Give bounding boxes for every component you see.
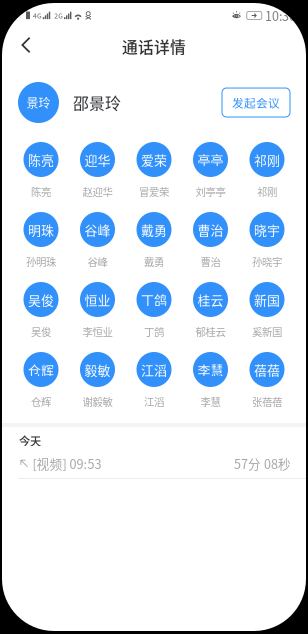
staticText: 爱荣 — [141, 150, 167, 169]
staticText: 赵迎华 — [82, 184, 112, 199]
staticText: 桂云 — [197, 290, 223, 309]
staticText: 戴勇 — [144, 254, 164, 269]
button[interactable]: 桂云 — [182, 282, 238, 344]
button[interactable]: 毅敏 — [69, 352, 125, 414]
staticText: 李恒业 — [82, 324, 112, 339]
staticText: 丁鸽 — [141, 290, 167, 309]
staticText: 2G — [54, 11, 63, 20]
button[interactable]: 祁刚 — [239, 142, 295, 204]
staticText: 迎华 — [84, 150, 110, 169]
button[interactable]: 曹治 — [182, 212, 238, 274]
staticText: 孙晓宇 — [252, 254, 282, 269]
button[interactable]: 丁鸽 — [126, 282, 182, 344]
staticText: 孙明珠 — [26, 254, 56, 269]
staticText: 通话详情 — [122, 35, 186, 58]
button[interactable]: 吴俊 — [13, 282, 69, 344]
button[interactable]: 戴勇 — [126, 212, 182, 274]
staticText: 丁鸽 — [144, 324, 164, 339]
staticText: 李慧 — [200, 394, 220, 409]
staticText: 发起会议 — [232, 94, 280, 111]
button[interactable]: 江滔 — [126, 352, 182, 414]
staticText: 吴俊 — [31, 324, 51, 339]
staticText: 奚新国 — [252, 324, 282, 339]
staticText: 谷峰 — [84, 220, 110, 239]
staticText: 明珠 — [28, 220, 54, 239]
button[interactable]: 谷峰 — [69, 212, 125, 274]
button[interactable]: 亭亭 — [182, 142, 238, 204]
staticText: 仓辉 — [31, 394, 51, 409]
staticText: 吴俊 — [28, 290, 54, 309]
button[interactable]: 晓宇 — [239, 212, 295, 274]
staticText: 4G — [33, 11, 42, 20]
staticText: 谷峰 — [87, 254, 107, 269]
button[interactable]: 爱荣 — [126, 142, 182, 204]
button[interactable]: 新国 — [239, 282, 295, 344]
staticText: 今天 — [19, 432, 41, 449]
staticText: 郁桂云 — [195, 324, 225, 339]
button[interactable]: 仓辉 — [13, 352, 69, 414]
staticText: 恒业 — [84, 290, 110, 309]
staticText: 曹治 — [200, 254, 220, 269]
staticText: 戴勇 — [141, 220, 167, 239]
button[interactable]: 明珠 — [13, 212, 69, 274]
staticText: 邵景玲 — [73, 91, 121, 114]
staticText: 冒爱荣 — [139, 184, 169, 199]
staticText: 祁刚 — [254, 150, 280, 169]
button[interactable]: 迎华 — [69, 142, 125, 204]
staticText: 刘亭亭 — [195, 184, 225, 199]
staticText: 李慧 — [197, 360, 223, 379]
staticText: 陈亮 — [28, 150, 54, 169]
button[interactable]: 陈亮 — [13, 142, 69, 204]
button[interactable]: 蓓蓓 — [239, 352, 295, 414]
button[interactable]: 发起会议 — [222, 88, 290, 117]
button[interactable]: 返回 — [10, 27, 42, 63]
staticText: 新国 — [254, 290, 280, 309]
button[interactable]: 恒业 — [69, 282, 125, 344]
staticText: 晓宇 — [254, 220, 280, 239]
staticText: 10:36 — [265, 6, 296, 24]
staticText: 江滔 — [144, 394, 164, 409]
staticText: 毅敏 — [84, 360, 110, 379]
staticText: 蓓蓓 — [254, 360, 280, 379]
staticText: 景玲 — [26, 94, 50, 111]
staticText: 谢毅敏 — [82, 394, 112, 409]
staticText: 57分 08秒 — [234, 454, 291, 472]
staticText: 祁刚 — [257, 184, 277, 199]
staticText: 仓辉 — [28, 360, 54, 379]
staticText: 江滔 — [141, 360, 167, 379]
staticText: [视频] 09:53 — [32, 454, 101, 473]
staticText: 陈亮 — [31, 184, 51, 199]
button[interactable]: 李慧 — [182, 352, 238, 414]
staticText: 张蓓蓓 — [252, 394, 282, 409]
staticText: 曹治 — [197, 220, 223, 239]
button[interactable]: [视频] 09:53 — [2, 454, 306, 473]
staticText: 亭亭 — [197, 150, 223, 169]
